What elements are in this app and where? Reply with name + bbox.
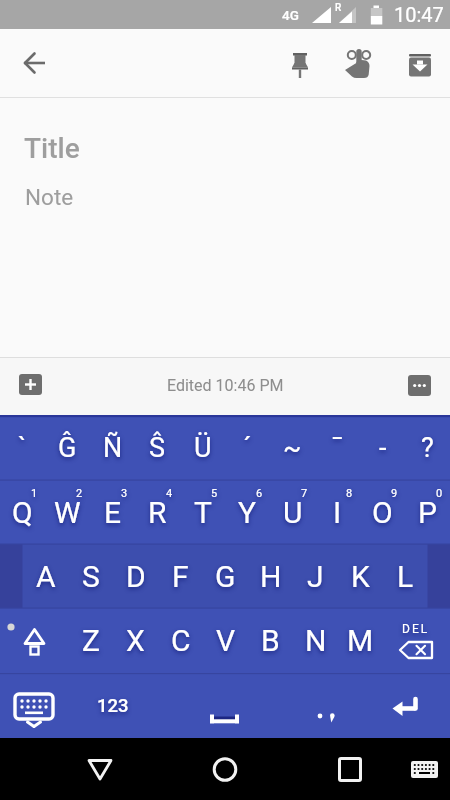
staticText: J — [307, 559, 324, 594]
staticText: R — [335, 2, 342, 14]
button[interactable] — [337, 43, 381, 87]
button[interactable]: O — [360, 480, 405, 544]
staticText: K — [351, 559, 370, 594]
button[interactable]: Y — [225, 480, 270, 544]
button[interactable]: ` — [0, 417, 45, 479]
button[interactable]: E — [90, 480, 135, 544]
staticText: Title — [24, 132, 80, 165]
button[interactable]: P — [405, 480, 450, 544]
button[interactable]: R — [135, 480, 180, 544]
button[interactable]: K — [338, 544, 383, 608]
staticText: N — [305, 623, 327, 658]
staticText: 10:47 — [394, 3, 444, 26]
button[interactable]: G — [203, 544, 248, 608]
button[interactable]: J — [293, 544, 338, 608]
button[interactable]: Ŝ — [135, 417, 180, 479]
staticText: C — [171, 623, 191, 658]
button[interactable]: ¯ — [315, 417, 360, 479]
button[interactable]: Ĝ — [45, 417, 90, 479]
button[interactable]: S — [68, 544, 113, 608]
button[interactable] — [135, 673, 315, 738]
button[interactable]: - — [360, 417, 405, 479]
staticText: ¯ — [331, 432, 344, 464]
staticText: L — [397, 559, 414, 594]
staticText: 0 — [436, 487, 443, 500]
staticText: Ĝ — [58, 432, 77, 464]
staticText: Y — [238, 495, 257, 530]
staticText: I — [333, 495, 342, 530]
button[interactable] — [278, 43, 322, 87]
staticText: A — [36, 559, 56, 594]
staticText: 9 — [391, 487, 398, 500]
button[interactable] — [398, 43, 442, 87]
staticText: ` — [18, 432, 27, 464]
staticText: S — [82, 559, 100, 594]
button[interactable]: Ü — [180, 417, 225, 479]
button[interactable]: X — [113, 608, 158, 673]
staticText: E — [104, 495, 122, 530]
staticText: 2 — [76, 487, 83, 500]
button[interactable]: ´ — [225, 417, 270, 479]
staticText: - — [379, 432, 387, 464]
button[interactable]: ~ — [270, 417, 315, 479]
button[interactable] — [322, 744, 378, 794]
button[interactable] — [382, 673, 450, 738]
button[interactable] — [197, 744, 253, 794]
staticText: B — [261, 623, 280, 658]
button[interactable]: L — [383, 544, 428, 608]
staticText: 4G — [282, 7, 299, 23]
button[interactable]: B — [248, 608, 293, 673]
staticText: M — [347, 623, 374, 658]
button[interactable]: F — [158, 544, 203, 608]
button[interactable]: D — [113, 544, 158, 608]
button[interactable]: 123 — [90, 673, 135, 738]
button[interactable] — [72, 744, 128, 794]
staticText: 123 — [97, 695, 129, 717]
staticText: ´ — [243, 432, 252, 464]
button[interactable]: M — [338, 608, 383, 673]
staticText: ~ — [283, 432, 302, 464]
button[interactable]: Q — [0, 480, 45, 544]
button[interactable]: A — [23, 544, 68, 608]
button[interactable]: N — [293, 608, 338, 673]
button[interactable] — [0, 608, 67, 673]
staticText: 1 — [31, 487, 38, 500]
staticText: Edited 10:46 PM — [167, 376, 284, 395]
button[interactable]: C — [158, 608, 203, 673]
staticText: Ü — [194, 432, 212, 464]
staticText: 8 — [346, 487, 353, 500]
staticText: V — [216, 623, 236, 658]
staticText: 6 — [256, 487, 263, 500]
staticText: 4 — [166, 487, 173, 500]
staticText: 3 — [121, 487, 128, 500]
staticText: Ñ — [103, 432, 123, 464]
button[interactable]: I — [315, 480, 360, 544]
button[interactable] — [19, 374, 42, 395]
button[interactable]: T — [180, 480, 225, 544]
button[interactable]: Ñ — [90, 417, 135, 479]
button[interactable]: H — [248, 544, 293, 608]
staticText: G — [215, 559, 236, 594]
button[interactable]: ? — [405, 417, 450, 479]
staticText: 7 — [301, 487, 308, 500]
button[interactable] — [405, 748, 445, 788]
staticText: U — [283, 495, 303, 530]
staticText: Z — [82, 623, 100, 658]
button[interactable] — [13, 41, 57, 85]
button[interactable] — [408, 375, 431, 396]
staticText: F — [172, 559, 189, 594]
button[interactable] — [382, 608, 450, 673]
staticText: Ŝ — [149, 432, 166, 464]
button[interactable] — [0, 673, 67, 738]
button[interactable]: Z — [68, 608, 113, 673]
button[interactable]: W — [45, 480, 90, 544]
staticText: D — [126, 559, 146, 594]
staticText: P — [418, 495, 437, 530]
button[interactable]: U — [270, 480, 315, 544]
staticText: 5 — [211, 487, 218, 500]
staticText: H — [260, 559, 282, 594]
staticText: T — [194, 495, 212, 530]
staticText: DEL — [402, 622, 430, 636]
staticText: O — [372, 495, 393, 530]
button[interactable]: V — [203, 608, 248, 673]
